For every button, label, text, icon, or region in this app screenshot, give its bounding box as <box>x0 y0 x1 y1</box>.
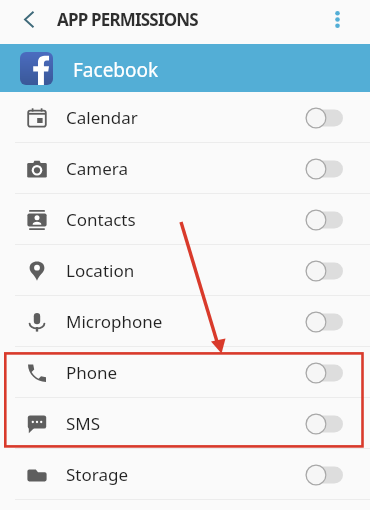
staticText: Microphone <box>66 310 163 333</box>
button[interactable]: Camera <box>0 143 370 194</box>
staticText: Calendar <box>66 106 138 129</box>
button[interactable]: Microphone <box>0 296 370 347</box>
button[interactable]: Location <box>0 245 370 296</box>
button[interactable]: Facebook <box>0 44 370 92</box>
staticText: Location <box>66 259 135 282</box>
button[interactable]: Contacts <box>0 194 370 245</box>
button[interactable]: Storage <box>0 449 370 500</box>
button[interactable]: Back <box>12 3 45 36</box>
staticText: Camera <box>66 157 128 180</box>
button[interactable]: More options <box>322 4 352 34</box>
button[interactable]: SMS <box>0 398 370 449</box>
staticText: Contacts <box>66 208 136 231</box>
staticText: Facebook <box>73 57 159 83</box>
staticText: APP PERMISSIONS <box>57 8 198 31</box>
button[interactable]: Phone <box>0 347 370 398</box>
staticText: Storage <box>66 463 129 486</box>
staticText: Phone <box>66 361 118 384</box>
button[interactable]: Calendar <box>0 92 370 143</box>
staticText: SMS <box>66 412 101 435</box>
